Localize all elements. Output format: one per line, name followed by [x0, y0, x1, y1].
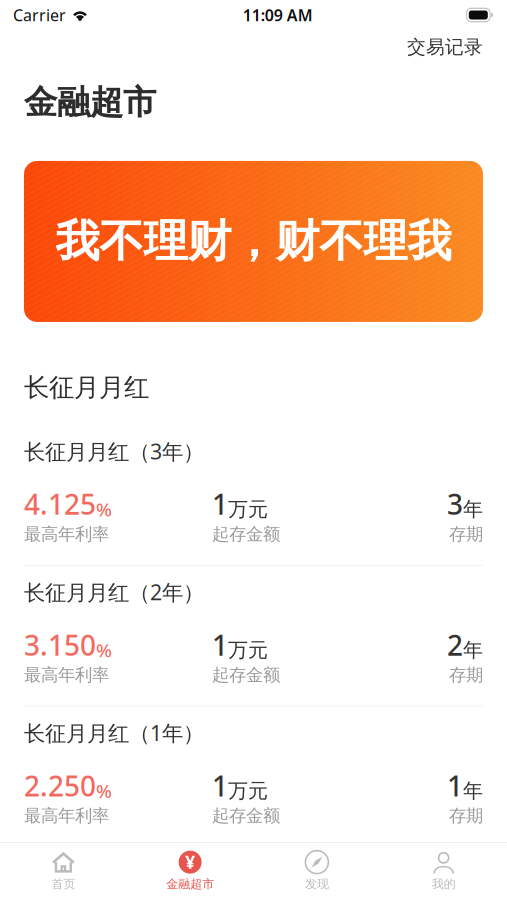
staticText: 1: [212, 767, 228, 804]
staticText: 长征月月红（3年）: [24, 437, 204, 465]
staticText: 存期: [449, 664, 483, 686]
staticText: 长征月月红（2年）: [24, 578, 204, 606]
staticText: 我不理财，财不理我: [55, 214, 451, 268]
button[interactable]: 交易记录: [383, 30, 507, 63]
staticText: 万元: [228, 638, 268, 662]
staticText: 起存金额: [212, 524, 280, 545]
staticText: 1: [447, 767, 463, 804]
staticText: %: [96, 778, 112, 803]
staticText: 年: [463, 638, 483, 662]
staticText: 1: [212, 626, 228, 663]
button[interactable]: ¥: [127, 844, 254, 898]
staticText: 长征月月红: [24, 372, 149, 403]
button[interactable]: 长征月月红（3年）: [0, 425, 507, 565]
staticText: Carrier: [13, 4, 66, 26]
staticText: 最高年利率: [24, 664, 109, 686]
staticText: 最高年利率: [24, 524, 109, 545]
staticText: 3.150: [24, 626, 96, 663]
button[interactable]: 发现: [253, 844, 380, 898]
staticText: 最高年利率: [24, 805, 109, 826]
staticText: 存期: [449, 805, 483, 826]
staticText: 我的: [432, 877, 456, 891]
staticText: 3: [447, 485, 463, 523]
staticText: 4.125: [24, 485, 96, 523]
staticText: 交易记录: [407, 35, 483, 58]
staticText: %: [96, 497, 112, 522]
staticText: ¥: [185, 851, 195, 874]
staticText: 2: [447, 626, 463, 663]
staticText: 发现: [305, 877, 329, 891]
staticText: 金融超市: [166, 877, 214, 891]
staticText: 起存金额: [212, 805, 280, 826]
button[interactable]: 我的: [380, 844, 507, 898]
staticText: 1: [212, 485, 228, 523]
staticText: 首页: [51, 877, 75, 891]
staticText: 万元: [228, 497, 268, 522]
button[interactable]: 我不理财，财不理我: [24, 161, 483, 322]
button[interactable]: 首页: [0, 844, 127, 898]
staticText: 年: [463, 779, 483, 803]
staticText: 金融超市: [24, 82, 156, 123]
staticText: 万元: [228, 779, 268, 803]
staticText: 11:09 AM: [243, 4, 313, 26]
button[interactable]: 长征月月红（2年）: [0, 566, 507, 706]
staticText: %: [96, 638, 112, 662]
staticText: 2.250: [24, 767, 96, 804]
staticText: 年: [463, 497, 483, 522]
staticText: 存期: [449, 524, 483, 545]
button[interactable]: 长征月月红（1年）: [0, 707, 507, 841]
staticText: 起存金额: [212, 664, 280, 686]
staticText: 长征月月红（1年）: [24, 719, 204, 747]
